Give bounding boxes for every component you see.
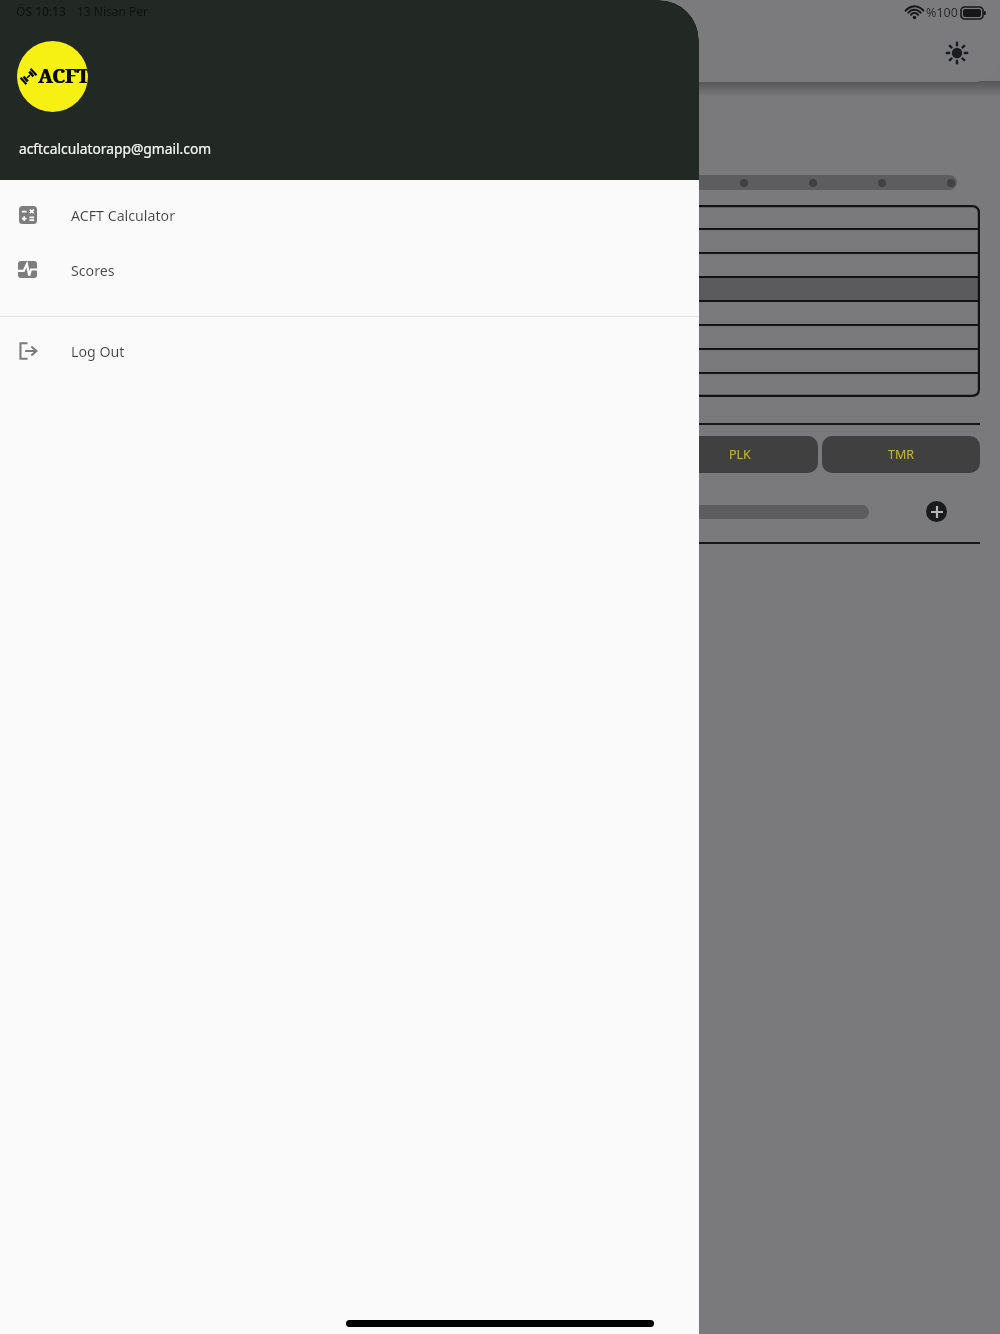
button[interactable]: Add [926, 501, 947, 522]
button[interactable]: Brightness [937, 33, 977, 73]
staticText: ACFT [39, 63, 88, 89]
button[interactable]: PLK [662, 436, 818, 473]
staticText: TMR [888, 446, 915, 463]
staticText: Log Out [71, 342, 125, 361]
staticText: PLK [729, 446, 751, 463]
staticText: acftcalculatorapp@gmail.com [19, 139, 212, 158]
staticText: ACFT Calculator [71, 206, 176, 225]
staticText: Scores [71, 261, 115, 280]
staticText: ÖS 10:13 [16, 3, 66, 19]
staticText: ACFT [38, 63, 88, 89]
staticText: %100 [926, 4, 958, 21]
button[interactable]: Scores [0, 242, 699, 297]
button[interactable]: ACFT Calculator [0, 187, 699, 242]
staticText: ACFT [38, 63, 88, 89]
button[interactable]: Log Out [0, 323, 699, 378]
staticText: 13 Nisan Per [77, 3, 149, 19]
button[interactable]: TMR [822, 436, 980, 473]
